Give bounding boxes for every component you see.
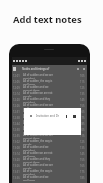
staticText: 105 bbox=[80, 128, 85, 132]
staticText: 135 bbox=[80, 92, 85, 96]
staticText: 12:26 bbox=[13, 104, 23, 108]
staticText: Invitation and Dr bbox=[36, 114, 59, 118]
staticText: 12:44 bbox=[13, 122, 23, 126]
staticText: 13:31 bbox=[13, 170, 23, 174]
staticText: 12:01 bbox=[13, 74, 23, 78]
staticText: 145 bbox=[80, 98, 85, 102]
staticText: 135 bbox=[80, 146, 85, 150]
staticText: All of sudden and we are bbox=[23, 163, 54, 167]
staticText: 105 bbox=[80, 74, 85, 78]
staticText: All of sudden, the way is bbox=[23, 79, 53, 83]
staticText: All of sudden and they bbox=[23, 97, 51, 101]
staticText: All of sudden we are not bbox=[23, 91, 53, 95]
staticText: people bbox=[23, 119, 32, 121]
staticText: 115 bbox=[80, 134, 85, 138]
staticText: and lower bbox=[23, 83, 36, 85]
staticText: 13:14 bbox=[13, 152, 23, 156]
staticText: 13:02 bbox=[13, 140, 23, 144]
staticText: 125 bbox=[80, 86, 85, 90]
staticText: president bbox=[23, 125, 35, 127]
staticText: and lower bbox=[23, 179, 36, 181]
staticText: 175 bbox=[80, 116, 85, 120]
staticText: All of sudden, the way is bbox=[23, 139, 53, 143]
staticText: Nodes and timings of bbox=[22, 67, 50, 71]
staticText: present them bbox=[23, 113, 40, 115]
staticText: people bbox=[23, 167, 32, 169]
staticText: All of sudden we are not bbox=[23, 151, 53, 155]
staticText: All of sudden and we bbox=[23, 85, 49, 89]
staticText: 12:14 bbox=[13, 92, 23, 96]
staticText: All of sudden we are not bbox=[23, 121, 53, 125]
staticText: and lower bbox=[23, 107, 36, 109]
staticText: 12:09 bbox=[13, 86, 23, 90]
staticText: All of sudden and we bbox=[23, 175, 49, 179]
staticText: 12:38 bbox=[13, 116, 23, 120]
staticText: 13:08 bbox=[13, 146, 23, 150]
staticText: 185 bbox=[80, 122, 85, 126]
staticText: 165 bbox=[80, 164, 85, 168]
staticText: 155 bbox=[80, 158, 85, 162]
staticText: All of sudden and we are bbox=[23, 73, 54, 77]
staticText: and lower bbox=[23, 155, 36, 157]
staticText: 13:36 bbox=[13, 176, 23, 180]
staticText: 155 bbox=[80, 104, 85, 108]
staticText: 12:50 bbox=[13, 128, 23, 132]
staticText: All of sudden and we bbox=[23, 115, 49, 119]
staticText: All of sudden and we are bbox=[23, 103, 54, 107]
staticText: and lower bbox=[23, 131, 36, 133]
staticText: All of sudden and we are bbox=[23, 133, 54, 137]
staticText: 12:20 bbox=[13, 98, 23, 102]
staticText: 175 bbox=[80, 170, 85, 174]
staticText: present them bbox=[23, 89, 40, 91]
staticText: 12:31 bbox=[13, 110, 23, 114]
staticText: people bbox=[23, 95, 32, 97]
staticText: Add text notes bbox=[13, 13, 82, 26]
staticText: 145 bbox=[80, 152, 85, 156]
staticText: 185 bbox=[80, 176, 85, 180]
staticText: present them bbox=[23, 161, 40, 163]
staticText: All of sudden, the way is bbox=[23, 169, 53, 173]
staticText: present them bbox=[23, 137, 40, 139]
staticText: president bbox=[23, 101, 35, 103]
staticText: president bbox=[23, 77, 35, 79]
staticText: 12:55 bbox=[13, 134, 23, 138]
staticText: All of sudden and we bbox=[23, 145, 49, 149]
staticText: 125 bbox=[80, 140, 85, 144]
staticText: All of sudden and they bbox=[23, 127, 51, 131]
staticText: 13:26 bbox=[13, 164, 23, 168]
staticText: people bbox=[23, 143, 32, 145]
staticText: president bbox=[23, 149, 35, 151]
staticText: 13:20 bbox=[13, 158, 23, 162]
staticText: 12:05 bbox=[13, 80, 23, 84]
staticText: All of sudden and they bbox=[23, 157, 51, 161]
staticText: All of sudden, the way is bbox=[23, 109, 53, 113]
staticText: president bbox=[23, 173, 35, 175]
staticText: 115 bbox=[80, 80, 85, 84]
staticText: 165 bbox=[80, 110, 85, 114]
